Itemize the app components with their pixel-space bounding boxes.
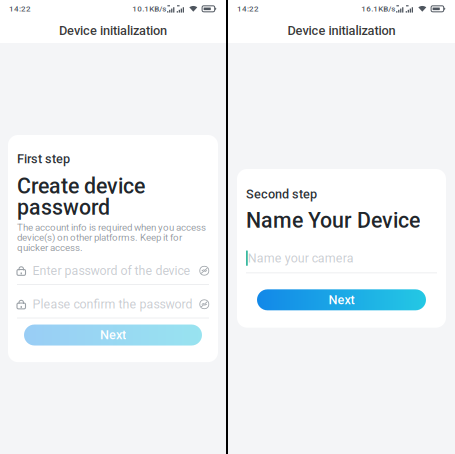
staticText: quicker access. (17, 242, 83, 253)
staticText: 10.1KB/s (132, 4, 166, 13)
staticText: Device initialization (287, 23, 395, 38)
staticText: Name Your Device (246, 208, 420, 233)
staticText: Second step (246, 187, 317, 202)
staticText: Enter password of the device (32, 263, 190, 278)
staticText: The account info is required when you ac… (17, 222, 206, 233)
button[interactable]: Name your camera (246, 237, 437, 272)
staticText: Next (328, 292, 354, 307)
button[interactable]: Next (17, 324, 209, 345)
button[interactable]: Please confirm the password (17, 285, 209, 317)
button[interactable]: Next (246, 289, 437, 310)
staticText: Name your camera (248, 251, 354, 265)
staticText: Next (100, 328, 126, 342)
staticText: 14:22 (237, 4, 259, 13)
staticText: Please confirm the password (32, 297, 192, 311)
staticText: Device initialization (59, 23, 167, 38)
staticText: device(s) on other platforms. Keep it fo… (17, 232, 182, 243)
staticText: password (17, 195, 110, 220)
staticText: Create device (17, 174, 145, 199)
staticText: 16.1KB/s (361, 4, 395, 13)
staticText: First step (17, 151, 70, 166)
button[interactable]: Enter password of the device (17, 251, 209, 284)
staticText: 14:22 (9, 4, 31, 13)
